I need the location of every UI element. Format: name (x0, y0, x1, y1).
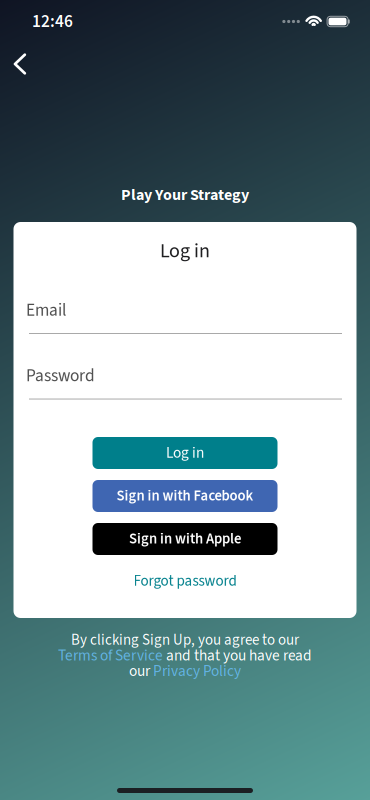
staticText: Password (26, 363, 95, 388)
button[interactable]: Forgot password (13, 571, 356, 591)
staticText: our (129, 660, 153, 682)
button[interactable]: Terms of Service (58, 645, 163, 666)
staticText: Sign in with Facebook (116, 486, 253, 506)
button[interactable]: Log in (92, 437, 277, 469)
staticText: 12:46 (32, 9, 73, 34)
staticText: Log in (160, 237, 210, 265)
staticText: Log in (166, 442, 204, 464)
staticText: Play Your Strategy (121, 184, 249, 206)
button[interactable]: Back (0, 42, 40, 86)
button[interactable]: Privacy Policy (153, 660, 241, 682)
staticText: Sign in with Apple (129, 529, 241, 549)
staticText: Terms of Service (58, 645, 163, 666)
button[interactable]: Sign in with Facebook (92, 480, 277, 512)
staticText: By clicking Sign Up, you agree to our (71, 629, 299, 651)
staticText: Forgot password (133, 570, 236, 592)
button[interactable]: Sign in with Apple (92, 523, 277, 555)
staticText: Email (26, 298, 66, 323)
staticText: and that you have read (163, 645, 312, 666)
staticText: Privacy Policy (153, 660, 241, 682)
